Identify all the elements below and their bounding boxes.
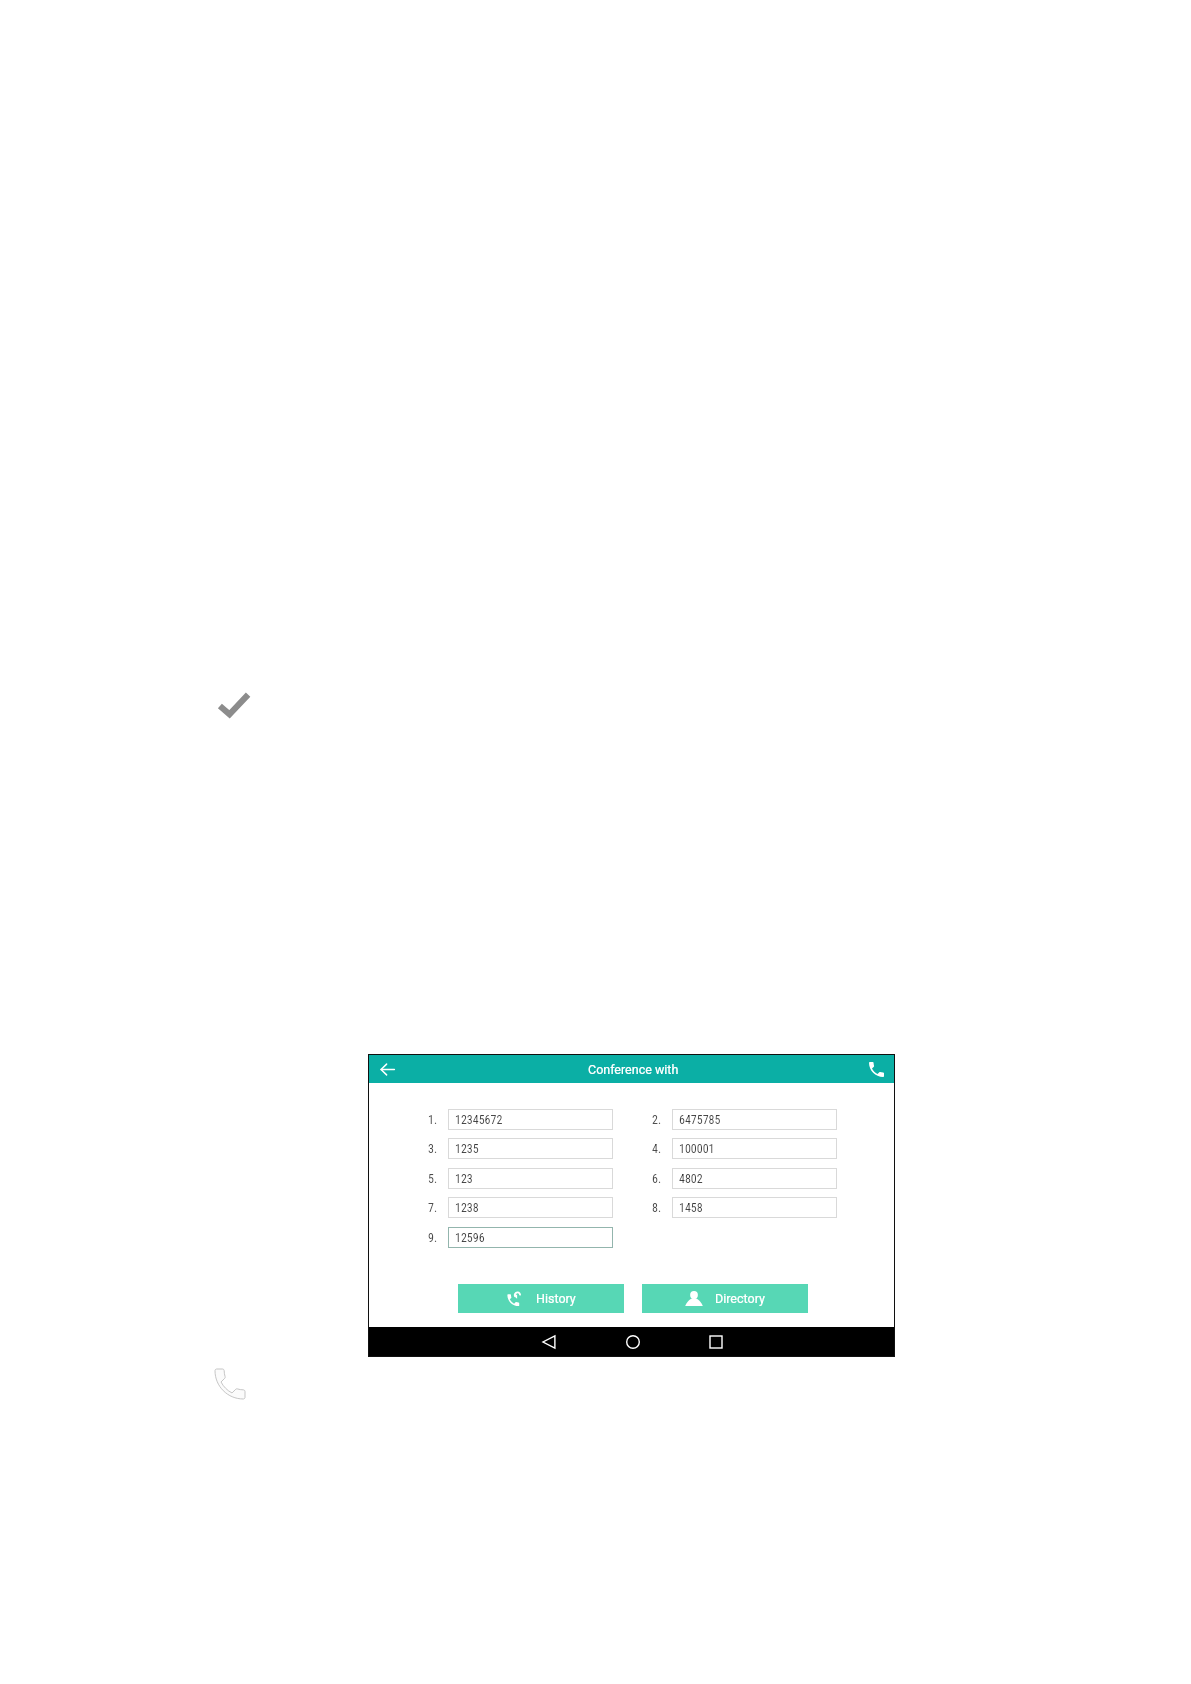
staticText: 12345672 [455,1113,503,1127]
button[interactable]: 4802 [672,1168,837,1189]
staticText: 1235 [455,1142,479,1156]
button[interactable]: 1235 [448,1138,613,1159]
staticText: 100001 [679,1142,715,1156]
staticText: 7. [428,1201,438,1215]
button[interactable]: History [458,1284,624,1313]
button[interactable]: Directory [642,1284,808,1313]
staticText: 9. [428,1231,438,1245]
button[interactable]: 12345672 [448,1109,613,1130]
staticText: 3. [428,1142,438,1156]
staticText: 6475785 [679,1113,721,1127]
staticText: 6. [652,1172,662,1186]
button[interactable]: Call [863,1056,889,1082]
staticText: Conference with [588,1062,679,1077]
staticText: History [536,1291,576,1306]
staticText: 1238 [455,1201,479,1215]
button[interactable]: 123 [448,1168,613,1189]
staticText: 5. [428,1172,438,1186]
button[interactable]: Recents [703,1329,729,1355]
staticText: 123 [455,1172,473,1186]
staticText: 1. [428,1113,438,1127]
staticText: 12596 [455,1231,485,1245]
staticText: Directory [715,1291,765,1306]
staticText: 2. [652,1113,662,1127]
button[interactable]: Back [374,1056,400,1082]
staticText: 4802 [679,1172,703,1186]
button[interactable]: 6475785 [672,1109,837,1130]
button[interactable]: Home [620,1329,646,1355]
button[interactable]: 100001 [672,1138,837,1159]
staticText: 8. [652,1201,662,1215]
button[interactable]: Back [536,1329,562,1355]
staticText: 4. [652,1142,662,1156]
button[interactable]: 1458 [672,1197,837,1218]
button[interactable]: 1238 [448,1197,613,1218]
staticText: 1458 [679,1201,703,1215]
button[interactable]: 12596 [448,1227,613,1248]
